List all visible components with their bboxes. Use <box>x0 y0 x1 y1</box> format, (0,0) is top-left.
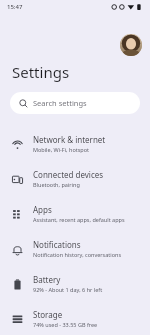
button[interactable]: Storage <box>0 301 150 335</box>
staticText: 74% used - 33.55 GB free <box>33 321 98 328</box>
staticText: Network & internet <box>33 134 106 145</box>
staticText: Bluetooth, pairing <box>33 181 80 188</box>
staticText: Storage <box>33 309 63 320</box>
staticText: Apps <box>33 204 52 215</box>
staticText: Battery <box>33 274 61 285</box>
button[interactable]: Notifications <box>0 231 150 266</box>
staticText: Connected devices <box>33 169 104 180</box>
staticText: Mobile, Wi-Fi, hotspot <box>33 146 90 153</box>
button[interactable]: Search settings <box>10 92 140 114</box>
staticText: Notifications <box>33 239 81 250</box>
button[interactable]: Network & internet <box>0 126 150 161</box>
button[interactable]: Connected devices <box>0 161 150 196</box>
staticText: 92% - About 1 day, 6 hr left <box>33 286 103 293</box>
button[interactable]: Apps <box>0 196 150 231</box>
staticText: Notification history, conversations <box>33 251 122 258</box>
staticText: Settings <box>12 62 70 82</box>
staticText: 15:47 <box>7 3 23 11</box>
staticText: Search settings <box>33 98 87 108</box>
staticText: Assistant, recent apps, default apps <box>33 216 125 223</box>
button[interactable]: Battery <box>0 266 150 301</box>
button[interactable]: Account <box>120 34 142 56</box>
